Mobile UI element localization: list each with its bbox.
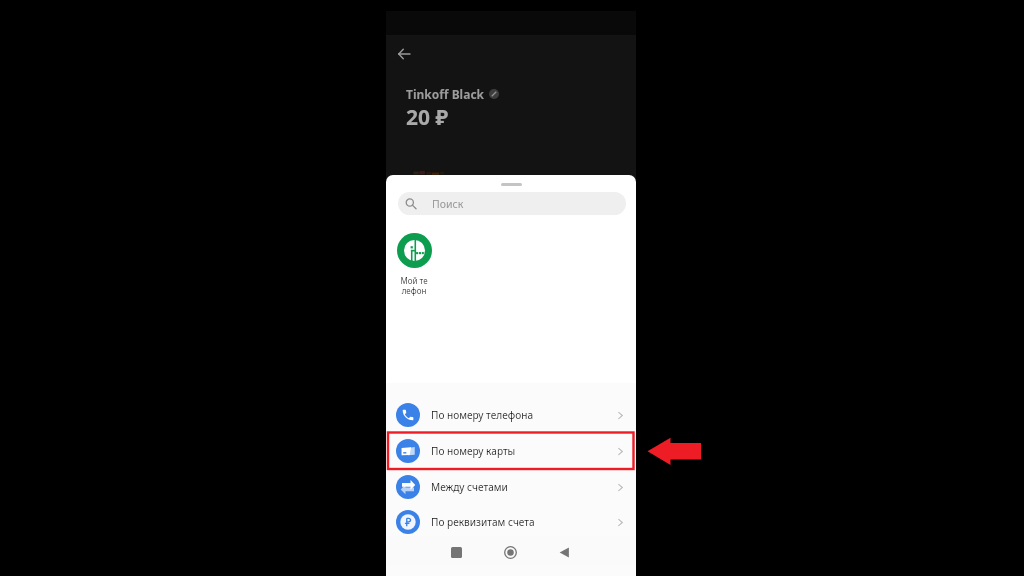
staticText: По номеру карты xyxy=(431,444,516,458)
button[interactable]: Мой те лефон xyxy=(393,233,435,297)
button[interactable]: Back xyxy=(551,539,577,565)
button[interactable]: Между счетами xyxy=(386,469,636,505)
staticText: По номеру телефона xyxy=(431,408,534,422)
button[interactable]: Back xyxy=(392,42,415,65)
staticText: Мой те лефон xyxy=(400,275,428,297)
staticText: По реквизитам счета xyxy=(431,515,535,529)
button[interactable]: По реквизитам счета xyxy=(386,504,636,540)
button[interactable]: Поиск xyxy=(398,192,626,215)
staticText: Поиск xyxy=(432,197,464,211)
button[interactable]: По номеру телефона xyxy=(386,397,636,433)
staticText: 20 ₽ xyxy=(406,103,449,132)
staticText: Между счетами xyxy=(431,480,508,494)
button[interactable]: По номеру карты xyxy=(386,433,636,469)
staticText: Tinkoff Black xyxy=(406,86,485,102)
button[interactable]: Home xyxy=(497,539,523,565)
button[interactable]: Recent apps xyxy=(443,539,469,565)
